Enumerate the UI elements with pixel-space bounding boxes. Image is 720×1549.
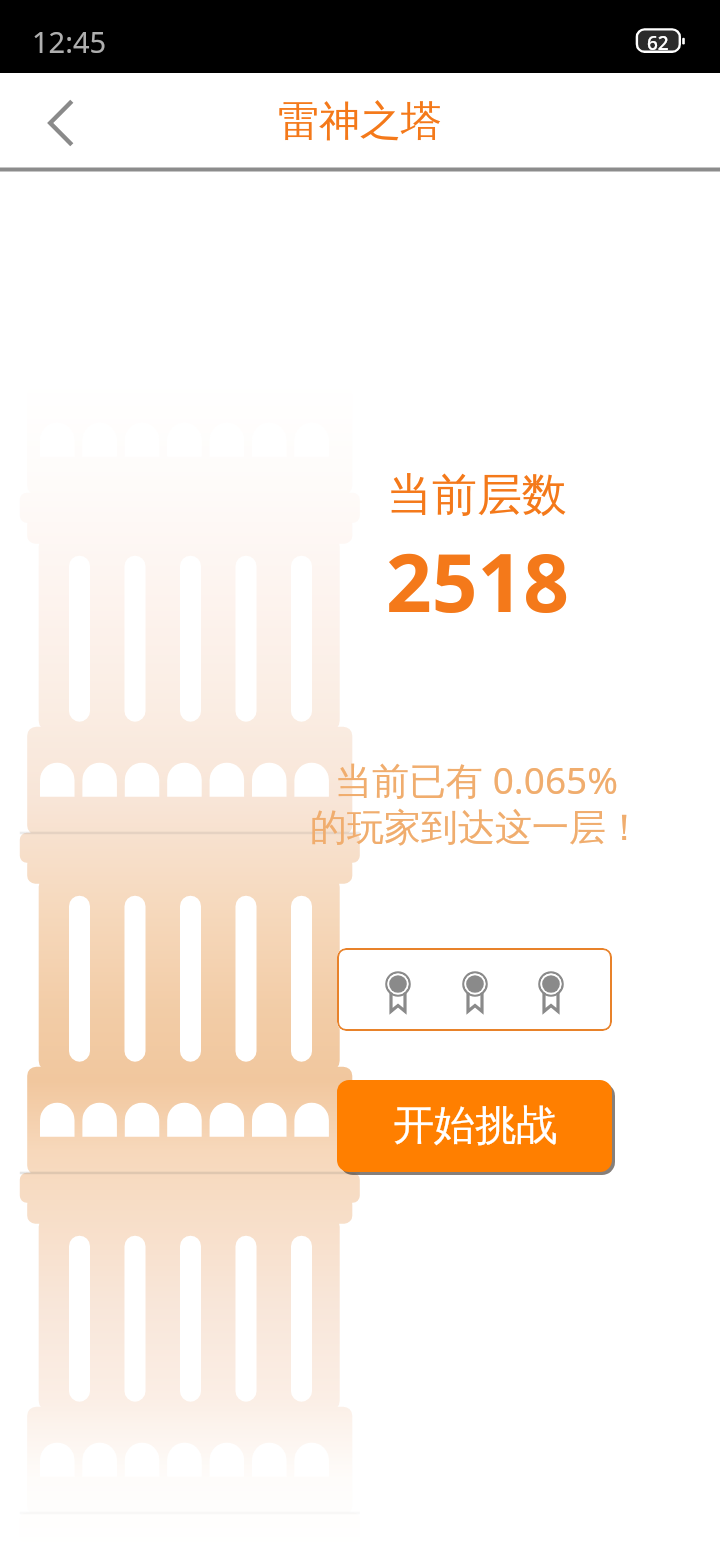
button[interactable]: 开始挑战 [337, 1080, 612, 1172]
staticText: 2518 [386, 526, 570, 635]
staticText: 开始挑战 [393, 1100, 557, 1152]
staticText: 雷神之塔 [278, 96, 442, 148]
staticText: 12:45 [32, 22, 107, 61]
button[interactable]: Medals [337, 948, 612, 1031]
staticText: 当前层数 [387, 467, 567, 524]
button[interactable]: Back [19, 81, 103, 165]
staticText: 当前已有 0.065% 的玩家到达这一层！ [310, 754, 643, 851]
staticText: 62 [647, 30, 669, 56]
